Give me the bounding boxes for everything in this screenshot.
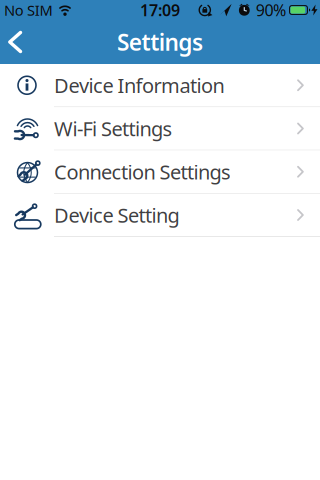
button[interactable]: Device Information bbox=[0, 64, 320, 106]
staticText: Device Setting bbox=[54, 202, 179, 228]
staticText: Device Information bbox=[54, 72, 224, 99]
staticText: Wi-Fi Settings bbox=[54, 115, 172, 142]
staticText: Settings bbox=[117, 27, 203, 57]
button[interactable]: Wi-Fi Settings bbox=[0, 107, 320, 150]
staticText: No SIM bbox=[4, 0, 52, 20]
button[interactable]: Connection Settings bbox=[0, 150, 320, 193]
staticText: Connection Settings bbox=[54, 158, 231, 185]
button[interactable]: Device Setting bbox=[0, 194, 320, 236]
staticText: 17:09 bbox=[140, 0, 180, 21]
staticText: 90% bbox=[256, 0, 286, 21]
button[interactable]: Back bbox=[0, 20, 33, 64]
